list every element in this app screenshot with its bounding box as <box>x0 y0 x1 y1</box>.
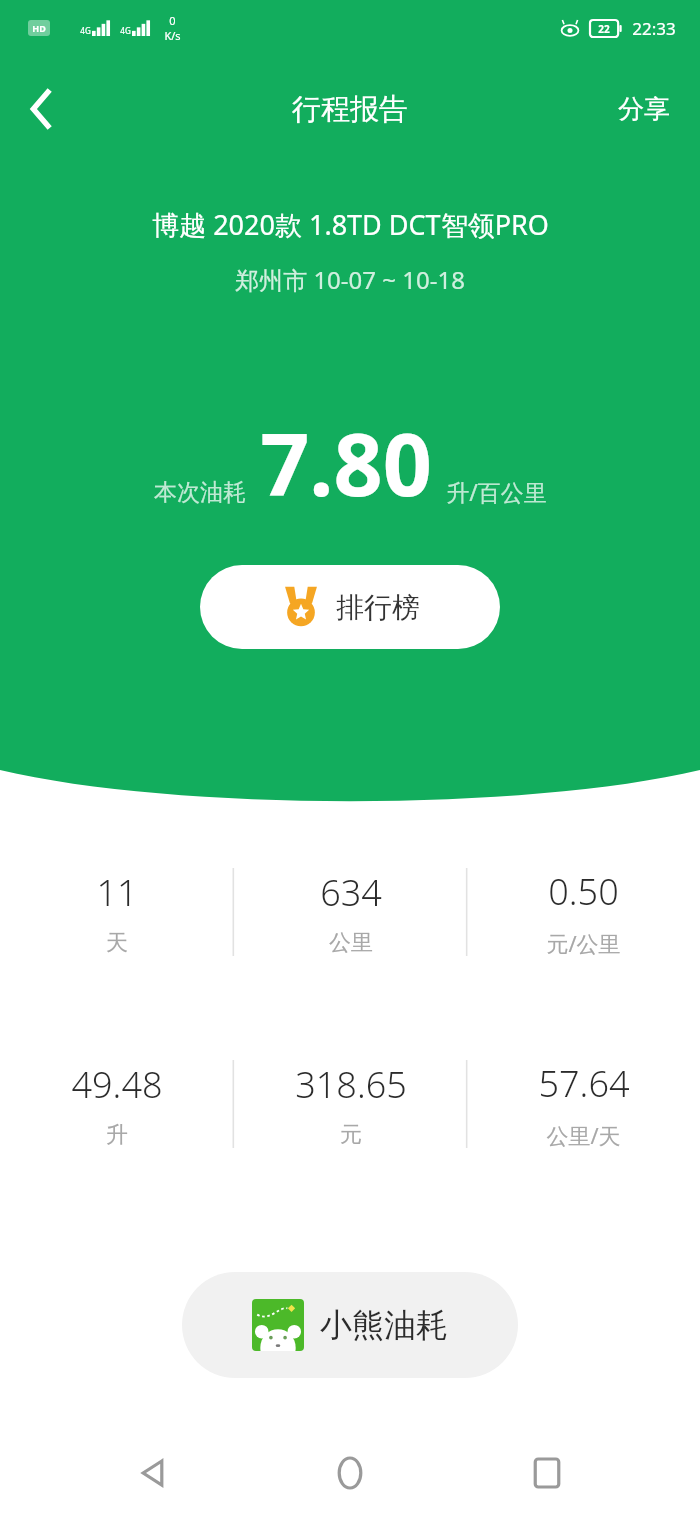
staticText: HD <box>32 22 46 34</box>
staticText: 郑州市 10-07 ~ 10-18 <box>235 263 465 296</box>
button[interactable]: 634 <box>234 862 467 962</box>
staticText: K/s <box>164 28 181 43</box>
staticText: 行程报告 <box>292 91 408 128</box>
staticText: 公里 <box>329 929 373 957</box>
button[interactable]: 返回 <box>111 1430 197 1516</box>
button[interactable]: 最近任务 <box>504 1430 590 1516</box>
button[interactable]: 57.64 <box>467 1054 700 1154</box>
button[interactable]: 主屏幕 <box>307 1430 393 1516</box>
button[interactable]: 排行榜 <box>200 565 500 649</box>
staticText: 公里/天 <box>546 1120 621 1150</box>
button[interactable]: 0.50 <box>467 862 700 962</box>
staticText: 11 <box>96 868 138 917</box>
staticText: 元 <box>340 1121 362 1149</box>
button[interactable]: 分享 <box>610 87 678 132</box>
staticText: 博越 2020款 1.8TD DCT智领PRO <box>152 206 549 243</box>
staticText: 4G <box>120 25 131 36</box>
staticText: 小熊油耗 <box>320 1305 448 1345</box>
button[interactable]: 小熊油耗 <box>182 1272 518 1378</box>
staticText: 57.64 <box>538 1059 630 1108</box>
staticText: 分享 <box>618 93 670 126</box>
button[interactable]: 11 <box>0 862 234 962</box>
staticText: 49.48 <box>71 1060 163 1109</box>
staticText: 升/百公里 <box>446 476 547 507</box>
staticText: 0 <box>169 13 176 28</box>
staticText: 排行榜 <box>336 590 420 625</box>
button[interactable]: 返回 <box>12 79 72 139</box>
staticText: 22:33 <box>632 17 676 40</box>
staticText: 0.50 <box>548 867 619 916</box>
staticText: 升 <box>106 1121 128 1149</box>
button[interactable]: 49.48 <box>0 1054 234 1154</box>
staticText: 634 <box>320 868 382 917</box>
staticText: 318.65 <box>295 1060 407 1109</box>
staticText: 22 <box>598 22 610 36</box>
staticText: 7.80 <box>260 404 432 521</box>
staticText: 4G <box>80 25 91 36</box>
staticText: 天 <box>106 929 128 957</box>
button[interactable]: 318.65 <box>234 1054 467 1154</box>
staticText: 元/公里 <box>546 928 621 958</box>
staticText: 本次油耗 <box>154 478 246 507</box>
